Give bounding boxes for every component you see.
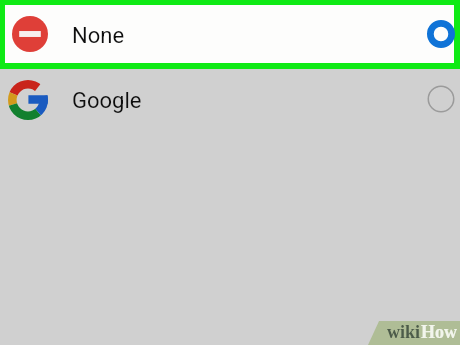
staticText: wiki — [387, 322, 421, 342]
button[interactable]: Select Google — [424, 82, 458, 116]
staticText: None — [72, 23, 125, 49]
staticText: How — [421, 322, 457, 342]
button[interactable]: No assistant app — [0, 0, 460, 69]
staticText: Google — [72, 88, 142, 114]
button[interactable]: Google — [0, 69, 460, 130]
other: Google — [8, 80, 48, 120]
button[interactable]: None, selected — [424, 17, 458, 51]
other: No assistant app — [10, 14, 50, 54]
